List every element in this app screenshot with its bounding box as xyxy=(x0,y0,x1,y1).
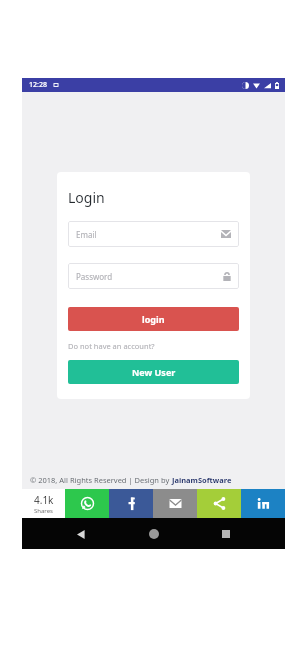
other: Password xyxy=(223,272,231,281)
button[interactable]: Home xyxy=(141,521,167,547)
staticText: Login xyxy=(68,188,105,207)
staticText: Email xyxy=(76,229,97,240)
button[interactable]: Back xyxy=(68,521,94,547)
button[interactable]: Recent apps xyxy=(213,521,239,547)
staticText: © 2018, All Rights Reserved | Design by xyxy=(30,475,172,485)
button[interactable]: Share on WhatsApp xyxy=(65,489,109,518)
other: Email xyxy=(221,230,231,238)
staticText: JainamSoftware xyxy=(172,475,232,485)
staticText: 4.1k xyxy=(34,493,54,507)
button[interactable]: Share by email xyxy=(153,489,197,518)
button[interactable]: Share on Facebook xyxy=(109,489,153,518)
staticText: Do not have an account? xyxy=(68,341,155,351)
staticText: login xyxy=(142,313,165,325)
staticText: Password xyxy=(76,271,113,282)
staticText: New User xyxy=(132,366,176,378)
button[interactable]: Email xyxy=(68,221,239,247)
staticText: Shares xyxy=(34,507,53,515)
button[interactable]: New User xyxy=(68,360,239,384)
button[interactable]: login xyxy=(68,307,239,331)
button[interactable]: Share on LinkedIn xyxy=(241,489,285,518)
button[interactable]: Share xyxy=(197,489,241,518)
staticText: 12:28 xyxy=(29,80,47,90)
button[interactable]: Password xyxy=(68,263,239,289)
button[interactable]: 4.1k xyxy=(22,489,65,518)
